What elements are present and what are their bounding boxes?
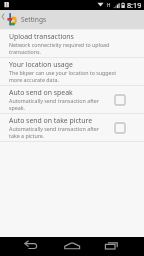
button[interactable]: Your location usage — [0, 58, 144, 85]
staticText: 8:19 — [127, 0, 142, 10]
button[interactable]: Upload transactions — [0, 30, 144, 57]
button[interactable]: Auto send on speak — [0, 86, 144, 113]
button[interactable]: Recent apps — [96, 237, 144, 256]
button[interactable]: Back — [0, 237, 48, 256]
staticText: Your location usage — [9, 60, 73, 69]
staticText: H — [107, 2, 111, 8]
staticText: Automatically send transaction after tak… — [9, 125, 108, 139]
staticText: Auto send on take picture — [9, 116, 93, 125]
staticText: Auto send on speak — [9, 88, 73, 97]
button[interactable]: Navigate up — [0, 10, 8, 28]
button[interactable]: Toggle — [112, 92, 128, 108]
staticText: Automatically send transaction after spe… — [9, 97, 108, 111]
staticText: Settings — [21, 15, 47, 24]
staticText: The bkper can use your location to sugge… — [9, 69, 121, 83]
button[interactable]: Toggle — [112, 120, 128, 136]
staticText: Upload transactions — [9, 32, 74, 41]
button[interactable]: Home — [48, 237, 96, 256]
staticText: Network connectivity required to upload … — [9, 41, 121, 55]
button[interactable]: Auto send on take picture — [0, 114, 144, 141]
